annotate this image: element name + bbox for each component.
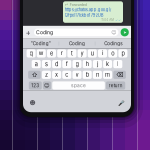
staticText: t [71,50,73,57]
staticText: QFpxlT7Ickbof79zUB [65,13,104,18]
button[interactable]: g [72,60,82,68]
button[interactable]: r [57,49,66,57]
staticText: + [25,27,31,38]
button[interactable]: ⌫ [113,71,126,79]
button[interactable]: w [37,49,46,57]
staticText: return [109,83,123,88]
button[interactable]: x [52,71,61,79]
staticText: ☺ [111,29,116,35]
staticText: w [39,50,44,57]
staticText: Codings [104,41,122,46]
staticText: l [117,61,118,67]
button[interactable]: n [93,71,102,79]
button[interactable]: a [32,60,41,68]
button[interactable]: Attach [25,28,32,37]
staticText: s [45,61,48,67]
staticText: space [71,83,86,88]
staticText: n [96,71,99,78]
staticText: m [105,71,110,78]
staticText: p [121,50,124,57]
button[interactable]: e [47,49,56,57]
button[interactable]: y [78,49,87,57]
staticText: y [81,50,84,57]
staticText: q [30,50,33,57]
button[interactable]: Codings [95,40,131,47]
staticText: d [55,61,58,67]
button[interactable]: Emoji keyboard [28,99,37,106]
staticText: i [102,50,103,57]
button[interactable]: return [106,81,125,90]
button[interactable]: ☺ [43,81,51,90]
staticText: b [86,71,89,78]
staticText: e [50,50,53,57]
button[interactable]: ⇧ [28,71,41,79]
button[interactable]: o [108,49,117,57]
staticText: 123 [31,83,39,88]
button[interactable]: c [62,71,71,79]
button[interactable]: k [103,60,112,68]
staticText: ☺ [44,82,50,89]
staticText: ☻ [29,99,35,106]
button[interactable]: b [83,71,92,79]
staticText: z [45,71,48,78]
button[interactable]: l [113,60,122,68]
staticText: o [111,50,114,57]
button[interactable]: z [42,71,51,79]
staticText: ⇧ [31,71,37,78]
button[interactable]: f [62,60,71,68]
staticText: k [106,61,109,67]
button[interactable]: h [83,60,92,68]
staticText: g [75,61,78,67]
button[interactable]: q [27,49,36,57]
button[interactable]: Dictation [117,99,126,106]
staticText: 🎤 [118,100,125,106]
button[interactable]: Coding [34,28,118,36]
staticText: v [75,71,78,78]
staticText: ➤ [123,30,126,35]
staticText: "Coding" [31,41,51,46]
button[interactable]: 123 [29,81,42,90]
staticText: j [97,61,98,67]
button[interactable]: t [67,49,76,57]
staticText: https://chatos.app.goo.gl/ [65,7,111,12]
button[interactable]: space [52,81,105,90]
staticText: a [35,61,38,67]
staticText: c [65,71,68,78]
staticText: ↱ Forwarded [65,2,87,7]
staticText: h [86,61,89,67]
staticText: f [66,61,68,67]
button[interactable]: j [93,60,102,68]
button[interactable]: i [98,49,107,57]
button[interactable]: m [103,71,112,79]
staticText: u [91,50,94,57]
staticText: Coding [36,29,53,35]
button[interactable]: v [72,71,82,79]
staticText: Coding [69,41,85,46]
staticText: ⌫ [116,71,123,78]
button[interactable]: "Coding" [23,40,59,47]
button[interactable]: Send [121,28,129,36]
staticText: r [61,50,63,57]
button[interactable]: s [42,60,51,68]
staticText: ✓✓ [114,18,121,22]
staticText: x [55,71,58,78]
button[interactable]: p [118,49,127,57]
button[interactable]: d [52,60,61,68]
staticText: 11:04 AM [101,18,114,22]
button[interactable]: u [88,49,97,57]
button[interactable]: Coding [59,40,95,47]
